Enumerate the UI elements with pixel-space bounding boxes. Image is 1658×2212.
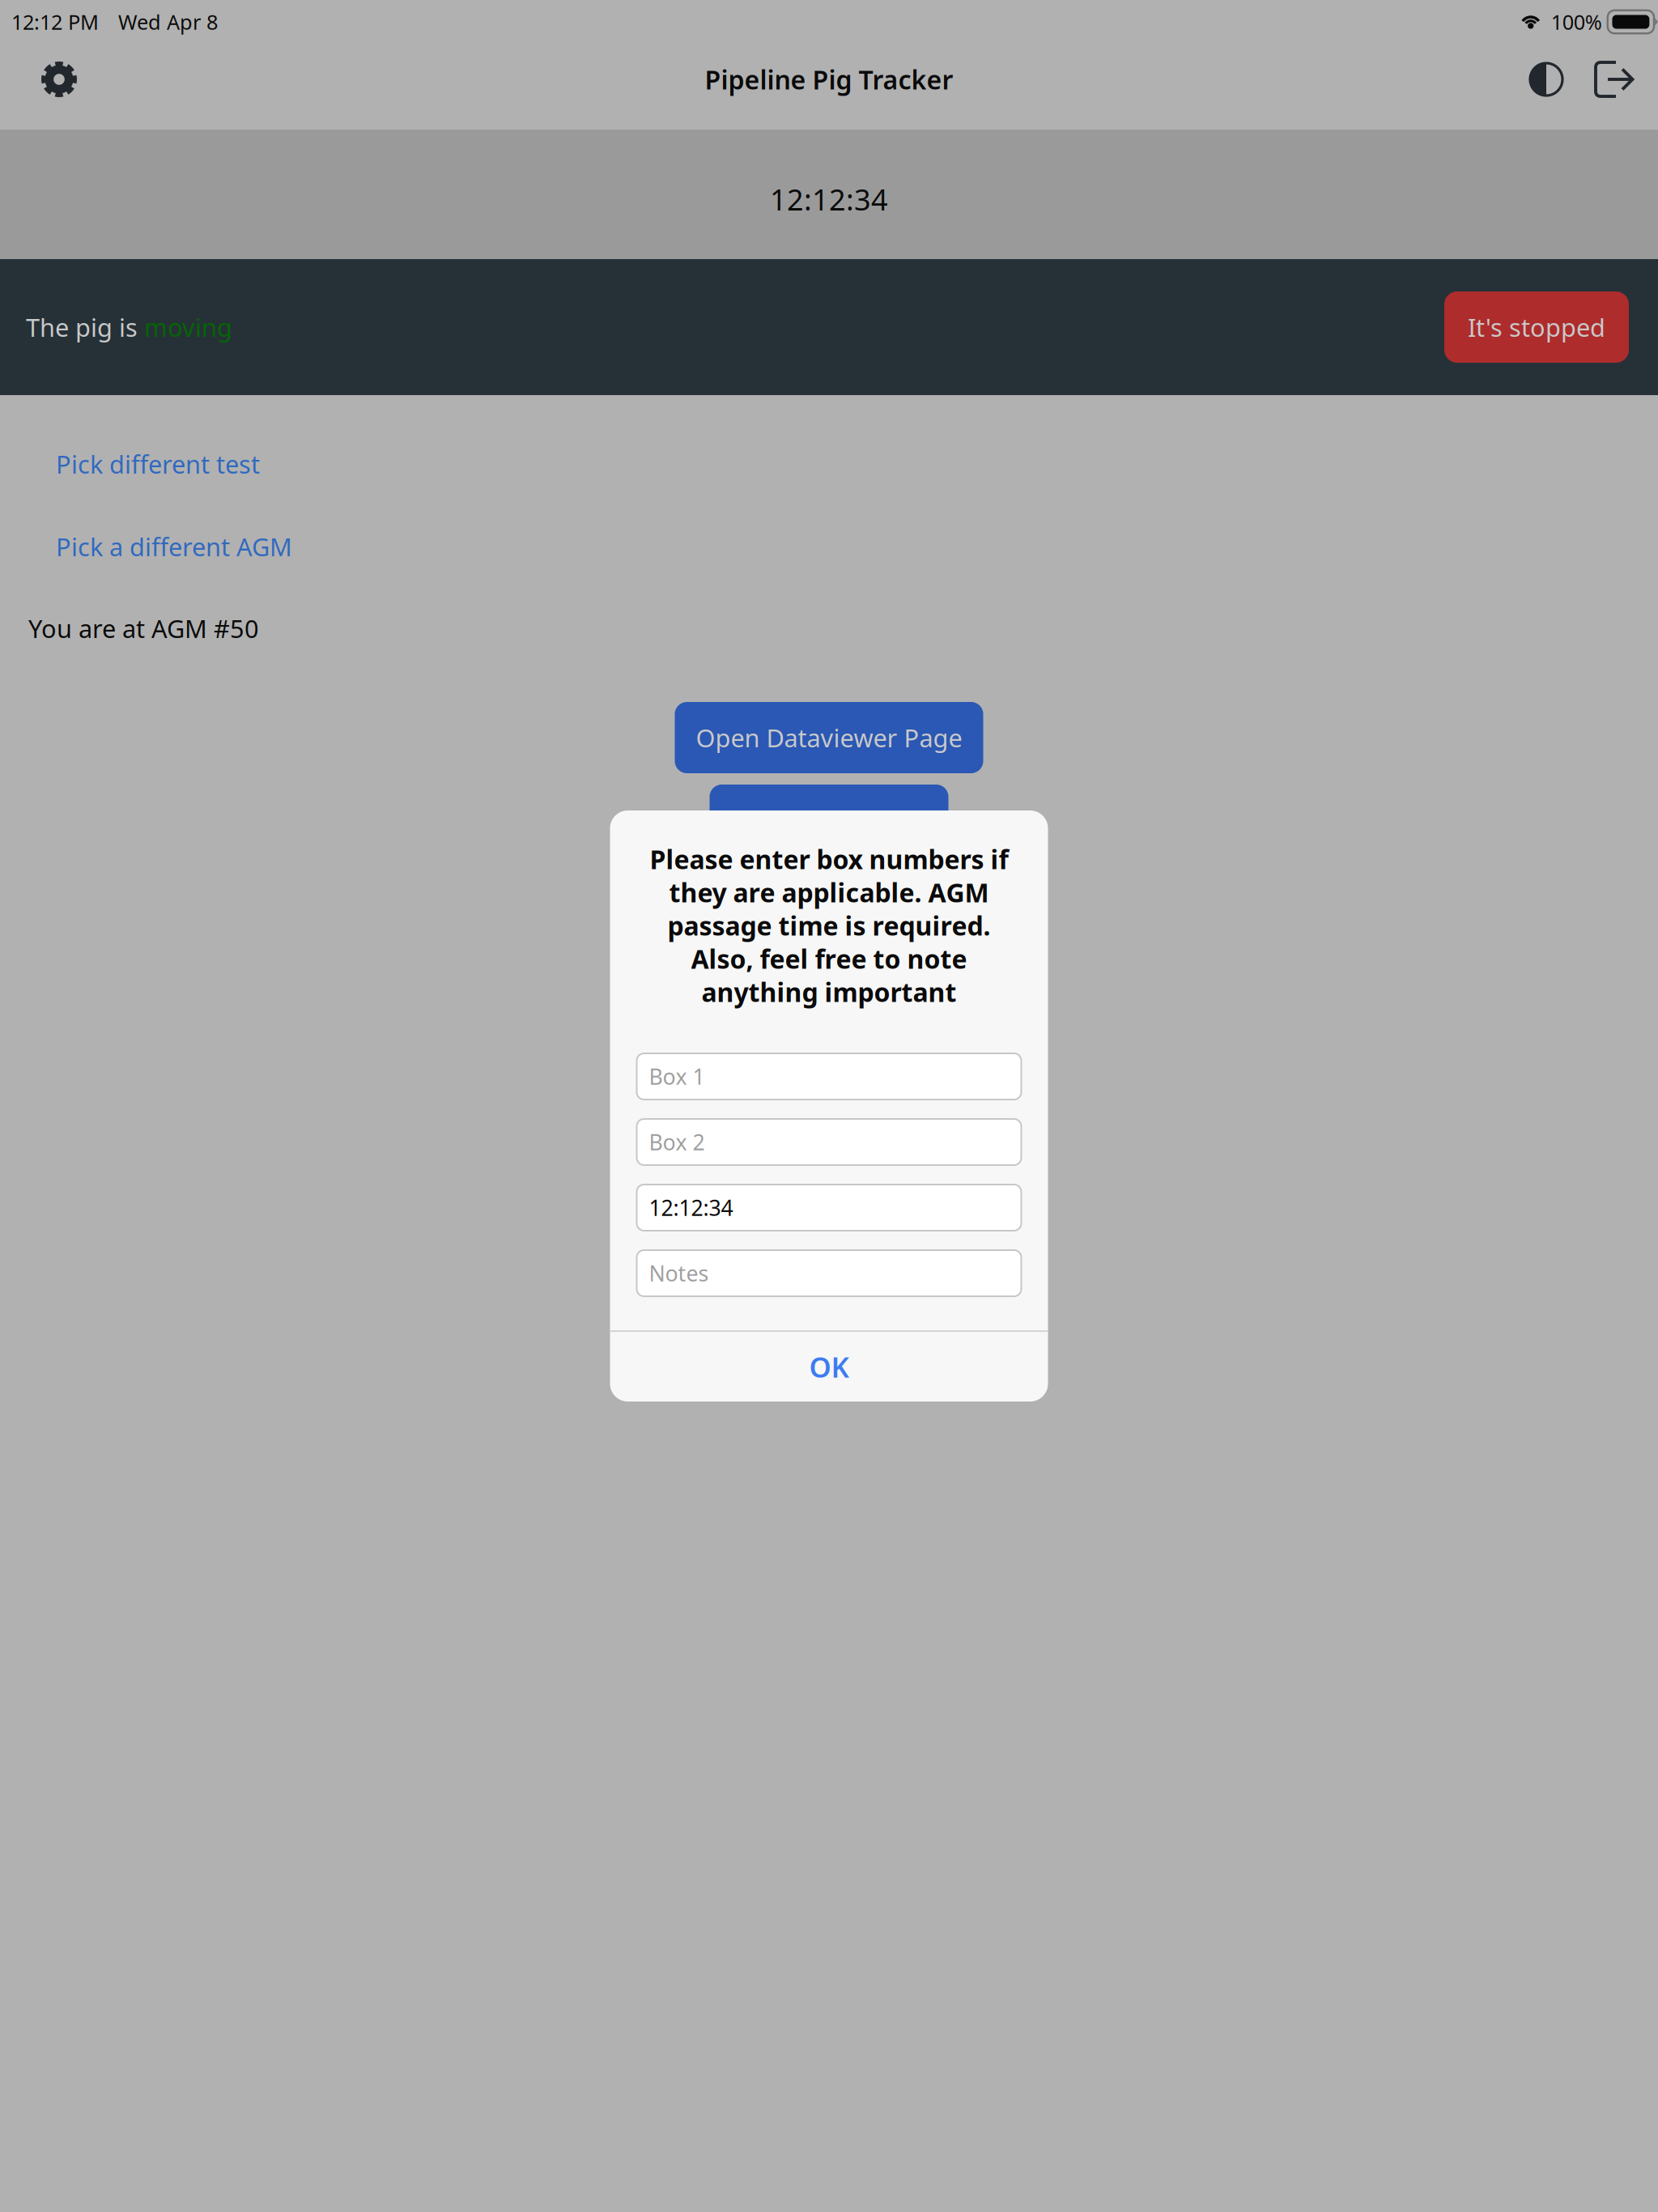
staticText: Please enter box numbers if: [650, 842, 1008, 876]
staticText: Open Dataviewer Page: [696, 721, 962, 754]
button[interactable]: Pick a different AGM: [0, 524, 325, 569]
staticText: It's stopped: [1468, 311, 1605, 344]
staticText: 100%: [1551, 8, 1602, 35]
staticText: anything important: [701, 975, 957, 1009]
staticText: passage time is required.: [667, 908, 991, 943]
staticText: Pick a different AGM: [56, 530, 292, 563]
staticText: 12:12 PM: [11, 8, 99, 35]
staticText: Open Map Page: [735, 804, 923, 837]
button[interactable]: Open Dataviewer Page: [675, 702, 983, 773]
button[interactable]: OK: [610, 1332, 1048, 1402]
staticText: The pig is: [26, 311, 144, 344]
button[interactable]: Open Map Page: [710, 785, 948, 856]
staticText: 12:12:34: [649, 1193, 733, 1222]
staticText: Also, feel free to note: [691, 941, 967, 976]
staticText: Notes: [649, 1259, 709, 1288]
staticText: You are at AGM #50: [28, 612, 259, 645]
staticText: Box 2: [649, 1128, 705, 1156]
staticText: they are applicable. AGM: [669, 875, 989, 909]
staticText: Pick different test: [56, 447, 260, 480]
button[interactable]: It's stopped: [1444, 291, 1629, 363]
button[interactable]: Pick different test: [0, 441, 292, 487]
staticText: Wed Apr 8: [118, 8, 218, 35]
button[interactable]: Settings: [20, 44, 98, 115]
staticText: 12:12:34: [770, 180, 888, 219]
staticText: Box 1: [649, 1062, 705, 1091]
staticText: moving: [144, 311, 232, 344]
staticText: OK: [809, 1348, 849, 1385]
staticText: Pipeline Pig Tracker: [705, 62, 953, 97]
button[interactable]: Toggle appearance: [1512, 44, 1580, 115]
button[interactable]: Sign out: [1580, 44, 1648, 115]
